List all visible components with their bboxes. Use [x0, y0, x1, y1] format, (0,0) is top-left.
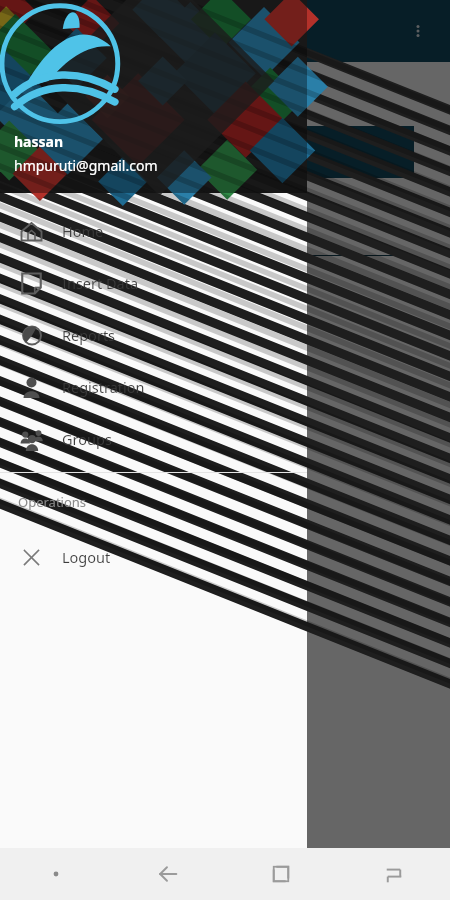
- button[interactable]: Recents: [337, 848, 450, 900]
- button[interactable]: Insert Data: [0, 257, 307, 309]
- staticText: Reports: [62, 325, 116, 345]
- button[interactable]: Back: [112, 848, 224, 900]
- staticText: Insert Data: [62, 273, 139, 293]
- staticText: Operations: [18, 493, 87, 511]
- button[interactable]: Reports: [0, 309, 307, 361]
- staticText: hassan: [14, 132, 64, 151]
- staticText: Registration: [62, 377, 145, 397]
- staticText: Home: [62, 221, 104, 241]
- button[interactable]: Home: [0, 205, 307, 257]
- button[interactable]: Home: [224, 848, 337, 900]
- button[interactable]: More options: [398, 11, 438, 51]
- staticText: Groups: [62, 429, 112, 449]
- button[interactable]: [14, 126, 414, 256]
- button[interactable]: Logout: [0, 531, 307, 583]
- staticText: Logout: [62, 547, 111, 567]
- staticText: hmpuruti@gmail.com: [14, 156, 158, 175]
- button[interactable]: Registration: [0, 361, 307, 413]
- button[interactable]: Groups: [0, 413, 307, 465]
